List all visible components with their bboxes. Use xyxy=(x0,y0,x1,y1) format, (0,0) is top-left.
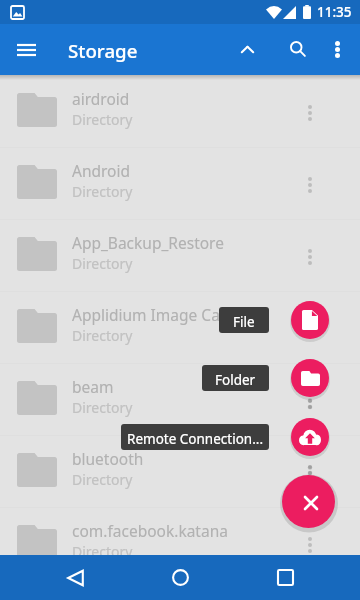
staticText: Directory xyxy=(72,542,133,561)
staticText: Directory xyxy=(72,254,133,273)
staticText: Remote Connection... xyxy=(127,430,263,448)
button[interactable]: Close menu xyxy=(282,475,335,528)
staticText: com.facebook.katana xyxy=(72,520,228,541)
button[interactable]: Collapse xyxy=(228,24,267,75)
staticText: airdroid xyxy=(72,88,130,109)
button[interactable]: More options xyxy=(321,24,353,75)
staticText: Directory xyxy=(72,182,133,201)
button[interactable]: Folder xyxy=(202,365,269,391)
button[interactable]: More options xyxy=(288,436,332,508)
button[interactable]: Applidium Image Cache xyxy=(0,292,360,364)
staticText: Directory xyxy=(72,398,133,417)
staticText: File xyxy=(233,313,255,331)
button[interactable]: airdroid xyxy=(0,76,360,148)
button[interactable]: More options xyxy=(288,220,332,292)
button[interactable]: More options xyxy=(288,364,332,436)
staticText: bluetooth xyxy=(72,448,144,469)
button[interactable]: Remote Connection... xyxy=(291,418,329,456)
staticText: App_Backup_Restore xyxy=(72,232,224,253)
button[interactable]: Recents xyxy=(261,555,309,600)
button[interactable]: Home xyxy=(156,555,204,600)
staticText: Directory xyxy=(72,110,133,129)
button[interactable]: File xyxy=(291,301,329,339)
staticText: Folder xyxy=(215,371,256,389)
button[interactable]: Android xyxy=(0,148,360,220)
staticText: Directory xyxy=(72,470,133,489)
staticText: Directory xyxy=(72,326,133,345)
button[interactable]: Search xyxy=(275,24,321,75)
button[interactable]: More options xyxy=(288,508,332,580)
button[interactable]: File xyxy=(219,307,269,333)
button[interactable]: bluetooth xyxy=(0,436,360,508)
button[interactable]: Navigation menu xyxy=(8,25,45,74)
button[interactable]: Back xyxy=(51,555,99,600)
button[interactable]: Remote Connection... xyxy=(121,424,269,450)
button[interactable]: More options xyxy=(288,148,332,220)
staticText: Applidium Image Cache xyxy=(72,304,246,325)
button[interactable]: com.facebook.katana xyxy=(0,508,360,580)
staticText: beam xyxy=(72,376,114,397)
staticText: 11:35 xyxy=(317,3,352,21)
button[interactable]: Folder xyxy=(291,359,329,397)
button[interactable]: beam xyxy=(0,364,360,436)
button[interactable]: More options xyxy=(288,76,332,148)
button[interactable]: More options xyxy=(288,292,332,364)
button[interactable]: App_Backup_Restore xyxy=(0,220,360,292)
staticText: Storage xyxy=(68,38,138,63)
staticText: Android xyxy=(72,160,131,181)
